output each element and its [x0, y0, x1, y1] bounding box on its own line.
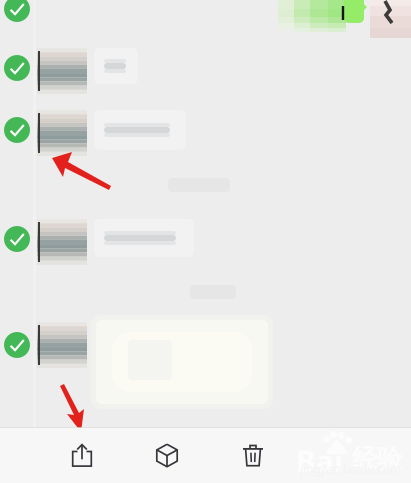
- button[interactable]: Selected message: [0, 0, 26, 26]
- button[interactable]: Add to Favourites: [124, 442, 210, 468]
- button[interactable]: Selected message: [0, 0, 26, 26]
- button[interactable]: Share: [40, 442, 124, 468]
- button[interactable]: Selected message: [0, 0, 26, 26]
- button[interactable]: Selected message: [0, 0, 26, 26]
- button[interactable]: Selected message: [0, 0, 26, 26]
- button[interactable]: Delete: [210, 442, 296, 468]
